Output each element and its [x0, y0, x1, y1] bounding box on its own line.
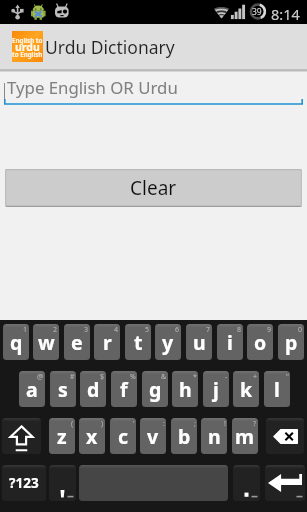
button[interactable]: c: [110, 418, 136, 454]
staticText: -: [225, 372, 228, 382]
staticText: $: [100, 372, 105, 382]
button[interactable]: w: [33, 324, 59, 360]
button[interactable]: h: [172, 371, 198, 407]
staticText: ?123: [9, 474, 39, 492]
staticText: v: [147, 423, 159, 450]
staticText: ): [101, 419, 104, 429]
staticText: h: [179, 376, 192, 403]
button[interactable]: f: [111, 371, 137, 407]
staticText: (: [71, 419, 74, 429]
staticText: urdu: [15, 40, 40, 54]
button[interactable]: Space: [79, 465, 228, 501]
staticText: 4: [114, 325, 119, 335]
button[interactable]: q: [3, 324, 29, 360]
staticText: !: [224, 419, 226, 429]
staticText: k: [240, 376, 253, 403]
staticText: i: [227, 329, 233, 356]
button[interactable]: m: [232, 418, 258, 454]
staticText: p: [285, 329, 298, 356]
button[interactable]: a: [19, 371, 45, 407]
staticText: d: [87, 376, 100, 403]
staticText: 39: [252, 6, 262, 18]
button[interactable]: o: [247, 324, 273, 360]
button[interactable]: Clear: [5, 169, 302, 207]
staticText: r: [103, 329, 112, 356]
button[interactable]: ?123: [2, 465, 46, 501]
staticText: Type English OR Urdu: [7, 76, 178, 99]
button[interactable]: j: [203, 371, 229, 407]
staticText: ;: [194, 419, 196, 429]
staticText: to English: [12, 50, 43, 58]
staticText: y: [162, 329, 174, 356]
staticText: t: [134, 329, 143, 356]
staticText: 1: [23, 325, 28, 335]
button[interactable]: u: [186, 324, 212, 360]
staticText: 2: [53, 325, 58, 335]
button[interactable]: k: [233, 371, 259, 407]
button[interactable]: t: [125, 324, 151, 360]
staticText: j: [213, 376, 219, 403]
staticText: g: [149, 376, 162, 403]
staticText: e: [71, 329, 83, 356]
button[interactable]: r: [94, 324, 120, 360]
staticText: ": [286, 372, 289, 382]
staticText: #: [70, 372, 75, 382]
button[interactable]: x: [79, 418, 105, 454]
staticText: m: [235, 423, 255, 450]
button[interactable]: s: [50, 371, 76, 407]
button[interactable]: Backspace: [266, 418, 304, 454]
staticText: u: [193, 329, 206, 356]
staticText: Clear: [130, 175, 177, 201]
staticText: w: [38, 329, 55, 356]
staticText: b: [178, 423, 191, 450]
staticText: 7: [206, 325, 211, 335]
staticText: &: [161, 372, 167, 382]
staticText: English to: [12, 36, 43, 44]
button[interactable]: Enter: [265, 465, 305, 501]
staticText: Urdu Dictionary: [45, 35, 175, 59]
button[interactable]: y: [155, 324, 181, 360]
staticText: z: [57, 423, 67, 450]
button[interactable]: p: [278, 324, 304, 360]
staticText: l: [274, 376, 280, 403]
staticText: 6: [175, 325, 180, 335]
button[interactable]: z: [49, 418, 75, 454]
staticText: c: [118, 423, 129, 450]
button[interactable]: l: [264, 371, 290, 407]
staticText: n: [208, 423, 221, 450]
staticText: 5: [145, 325, 150, 335]
staticText: *: [193, 372, 197, 382]
staticText: q: [10, 329, 23, 356]
staticText: s: [58, 376, 68, 403]
button[interactable]: e: [64, 324, 90, 360]
staticText: 8: [237, 325, 242, 335]
button[interactable]: n: [201, 418, 227, 454]
staticText: a: [26, 376, 38, 403]
staticText: x: [86, 423, 98, 450]
button[interactable]: Shift: [2, 418, 41, 454]
staticText: ?: [253, 419, 257, 429]
button[interactable]: i: [217, 324, 243, 360]
staticText: o: [254, 329, 267, 356]
staticText: 0: [298, 325, 303, 335]
staticText: 9: [267, 325, 272, 335]
staticText: %: [130, 372, 136, 382]
staticText: 3: [84, 325, 89, 335]
button[interactable]: g: [142, 371, 168, 407]
button[interactable]: v: [140, 418, 166, 454]
staticText: 8:14: [271, 4, 300, 24]
staticText: ': [133, 419, 135, 429]
staticText: @: [37, 372, 44, 382]
staticText: +: [253, 372, 258, 382]
staticText: :: [163, 419, 165, 429]
button[interactable]: d: [80, 371, 106, 407]
staticText: f: [120, 376, 128, 403]
button[interactable]: [233, 465, 260, 501]
button[interactable]: [49, 465, 76, 501]
button[interactable]: b: [171, 418, 197, 454]
